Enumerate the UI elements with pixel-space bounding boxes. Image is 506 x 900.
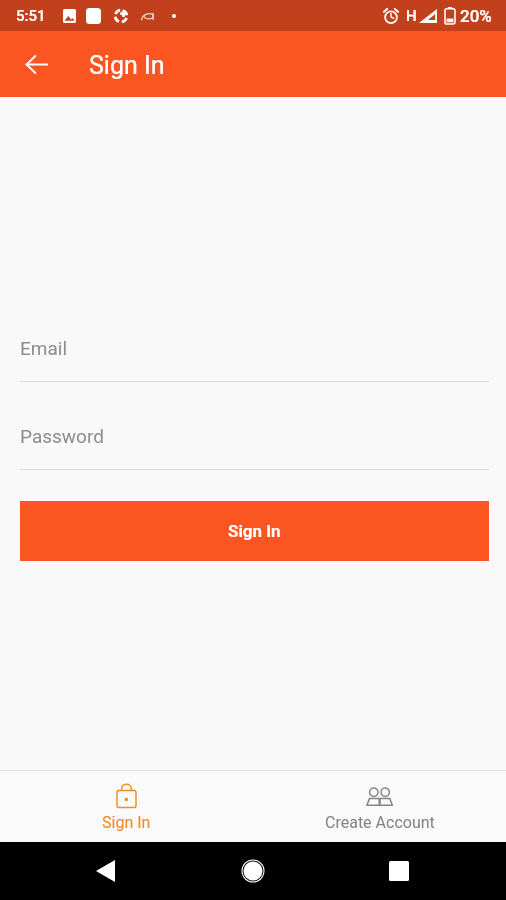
staticText: Sign In xyxy=(228,521,281,541)
staticText: H xyxy=(406,7,417,25)
staticText: 5:51 xyxy=(16,7,46,25)
button[interactable]: Back xyxy=(13,41,59,87)
staticText: 20% xyxy=(460,6,492,26)
staticText: Sign In xyxy=(89,51,165,80)
staticText: Create Account xyxy=(325,813,435,832)
staticText: Email xyxy=(20,337,68,359)
button[interactable]: Sign In xyxy=(20,501,489,561)
button[interactable]: Create Account xyxy=(253,771,506,842)
staticText: Sign In xyxy=(102,813,151,832)
staticText: Password xyxy=(20,425,104,447)
button[interactable]: Sign In xyxy=(0,771,253,842)
